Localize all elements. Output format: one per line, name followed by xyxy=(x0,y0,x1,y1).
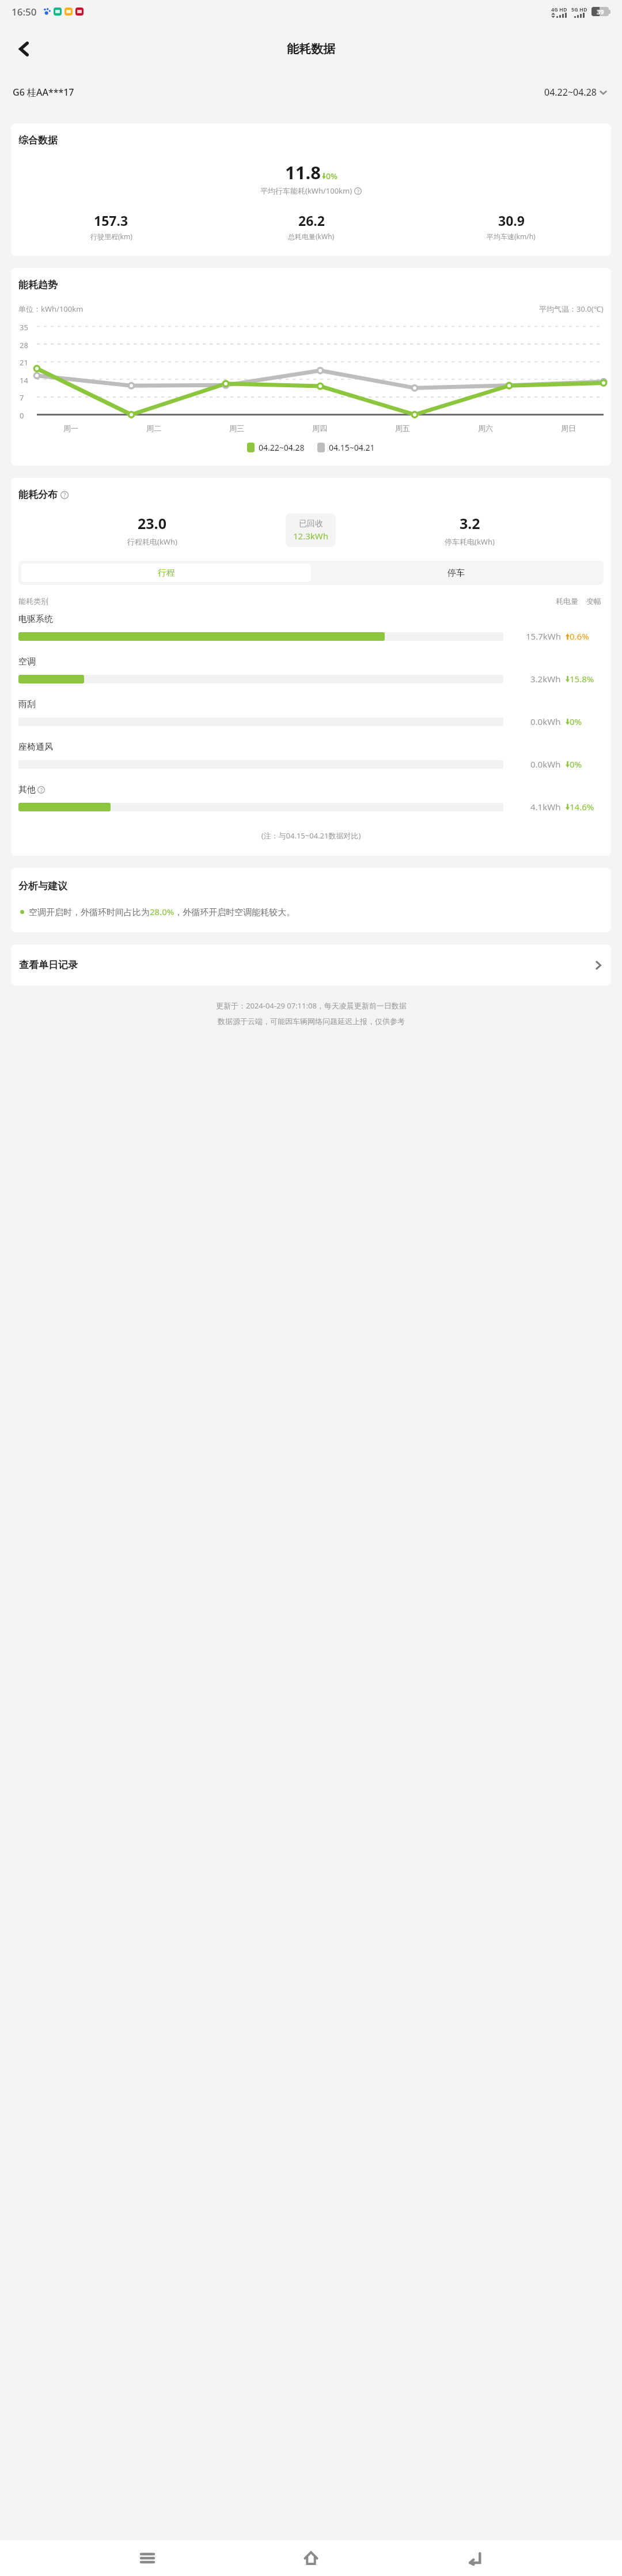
staticText: 空调开启时，外循环时间占比为28.0%，外循环开启时空调能耗较大。 xyxy=(29,906,295,917)
staticText: 7 xyxy=(20,392,24,401)
staticText: 更新于：2024-04-29 07:11:08，每天凌晨更新前一日数据 xyxy=(216,1000,407,1011)
staticText: 平均行车能耗(kWh/100km) xyxy=(260,186,352,196)
staticText: 0 xyxy=(20,410,24,419)
button[interactable]: Back xyxy=(8,33,40,65)
staticText: 0.0kWh xyxy=(530,758,561,770)
staticText: 耗电量 xyxy=(556,596,578,606)
staticText: 14.6% xyxy=(570,801,594,813)
staticText: 行程耗电(kWh) xyxy=(127,537,177,547)
button[interactable]: 行程 xyxy=(21,564,311,582)
staticText: 雨刮 xyxy=(18,699,36,710)
staticText: 0.6% xyxy=(570,630,589,642)
staticText: 行程 xyxy=(158,568,175,579)
button[interactable]: 04.22~04.28 xyxy=(542,84,609,101)
staticText: 0% xyxy=(570,758,582,770)
staticText: 周二 xyxy=(146,424,161,433)
staticText: 30.9 xyxy=(498,211,525,229)
staticText: 0% xyxy=(326,171,337,182)
staticText: 4G HD xyxy=(551,6,567,13)
staticText: 空调 xyxy=(18,656,36,667)
staticText: 数据源于云端，可能因车辆网络问题延迟上报，仅供参考 xyxy=(218,1017,405,1026)
staticText: G6 桂AA***17 xyxy=(13,86,74,99)
button[interactable]: Back xyxy=(458,2542,491,2574)
staticText: 157.3 xyxy=(94,211,128,229)
staticText: 已回收 xyxy=(299,519,323,529)
staticText: 0.0kWh xyxy=(530,716,561,727)
staticText: 39 xyxy=(597,7,604,16)
staticText: 综合数据 xyxy=(18,134,58,146)
staticText: 周四 xyxy=(312,424,327,433)
button[interactable]: Home xyxy=(295,2542,327,2574)
staticText: 3.2 xyxy=(460,513,480,533)
staticText: 周日 xyxy=(561,424,576,433)
staticText: 26.2 xyxy=(298,211,325,229)
staticText: 变幅 xyxy=(586,596,601,606)
staticText: 3.2kWh xyxy=(530,673,561,685)
staticText: 4.1kWh xyxy=(530,801,561,813)
staticText: ? xyxy=(40,787,43,794)
button[interactable]: Recents xyxy=(131,2542,164,2574)
staticText: (注：与04.15~04.21数据对比) xyxy=(11,830,611,841)
staticText: 能耗数据 xyxy=(287,41,335,56)
staticText: 平均车速(km/h) xyxy=(487,232,536,241)
staticText: 16:50 xyxy=(12,5,37,18)
staticText: 行驶里程(km) xyxy=(90,232,132,241)
staticText: 35 xyxy=(20,322,28,331)
staticText: 座椅通风 xyxy=(18,742,53,753)
staticText: 周三 xyxy=(229,424,244,433)
staticText: 单位：kWh/100km xyxy=(18,304,84,314)
staticText: 其他 xyxy=(18,784,36,795)
staticText: 04.22~04.28 xyxy=(544,86,597,99)
staticText: 04.15~04.21 xyxy=(329,442,375,453)
staticText: 15.8% xyxy=(570,673,594,685)
staticText: 21 xyxy=(20,357,28,366)
staticText: 11.8 xyxy=(285,160,321,184)
staticText: 28 xyxy=(20,340,28,349)
staticText: 0% xyxy=(570,716,582,727)
staticText: 平均气温：30.0(℃) xyxy=(539,304,604,314)
staticText: 查看单日记录 xyxy=(19,959,78,971)
staticText: 周五 xyxy=(395,424,410,433)
staticText: 能耗分布 xyxy=(18,489,58,501)
staticText: 周一 xyxy=(63,424,78,433)
staticText: 23.0 xyxy=(138,513,166,533)
staticText: 电驱系统 xyxy=(18,614,53,625)
staticText: ? xyxy=(357,188,359,195)
staticText: 周六 xyxy=(478,424,493,433)
staticText: 15.7kWh xyxy=(526,630,561,642)
staticText: 14 xyxy=(20,375,28,384)
staticText: 5G HD xyxy=(571,6,587,13)
staticText: 能耗类别 xyxy=(18,596,48,606)
staticText: 12.3kWh xyxy=(293,530,328,542)
staticText: 停车 xyxy=(447,568,465,579)
button[interactable]: 停车 xyxy=(311,564,601,582)
staticText: 停车耗电(kWh) xyxy=(445,537,495,547)
staticText: 分析与建议 xyxy=(18,880,67,892)
staticText: 总耗电量(kWh) xyxy=(288,232,335,241)
staticText: 能耗趋势 xyxy=(18,279,58,291)
staticText: 04.22~04.28 xyxy=(259,442,305,453)
button[interactable]: 查看单日记录 xyxy=(11,945,611,985)
staticText: ? xyxy=(63,491,66,499)
